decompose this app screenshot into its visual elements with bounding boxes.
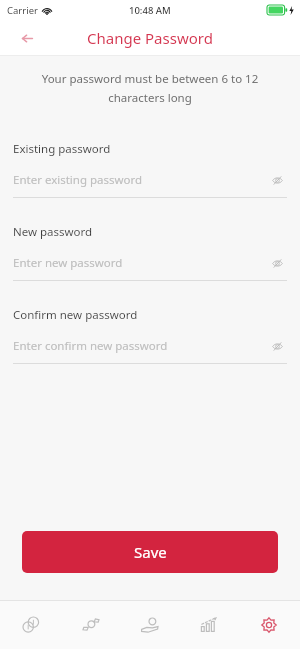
staticText: Enter confirm new password <box>13 338 267 354</box>
button[interactable]: Save <box>22 531 278 573</box>
staticText: characters long <box>0 90 300 106</box>
button[interactable]: Insights <box>181 601 237 649</box>
staticText: New password <box>13 224 93 240</box>
staticText: Carrier <box>7 4 38 17</box>
staticText: Save <box>134 542 167 562</box>
staticText: Enter existing password <box>13 172 267 188</box>
staticText: 10:48 AM <box>129 4 171 17</box>
button[interactable]: Accounts <box>3 601 59 649</box>
staticText: Your password must be between 6 to 12 <box>0 71 300 87</box>
button[interactable]: Settings <box>241 601 297 649</box>
staticText: Change Password <box>87 28 213 48</box>
button[interactable]: Back <box>14 25 40 51</box>
staticText: Existing password <box>13 141 111 157</box>
staticText: Enter new password <box>13 255 267 271</box>
staticText: Confirm new password <box>13 307 138 323</box>
button[interactable]: Show password <box>267 336 287 356</box>
button[interactable]: Show password <box>267 170 287 190</box>
button[interactable]: Transfers <box>63 601 119 649</box>
button[interactable]: Payments <box>122 601 178 649</box>
button[interactable]: Show password <box>267 253 287 273</box>
